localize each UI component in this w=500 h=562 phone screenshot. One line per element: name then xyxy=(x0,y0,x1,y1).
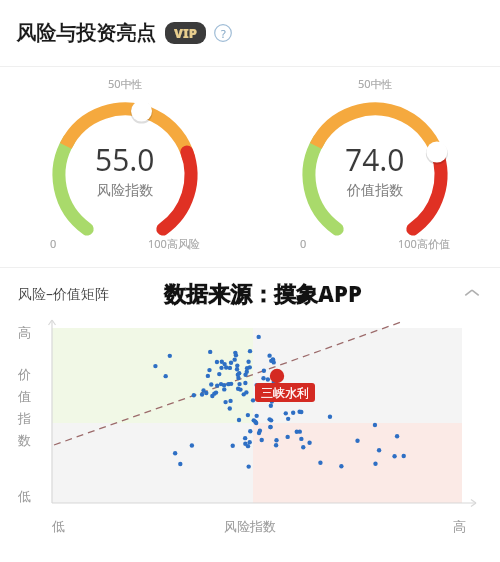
staticText: 0 xyxy=(300,236,307,251)
staticText: VIP xyxy=(174,24,197,42)
staticText: 高 xyxy=(18,324,31,340)
staticText: 风险指数 xyxy=(224,518,276,534)
staticText: 指 xyxy=(18,410,31,426)
staticText: 低 xyxy=(52,518,65,534)
staticText: 55.0 xyxy=(95,139,155,180)
staticText: 数据来源：摸象APP xyxy=(164,278,362,308)
staticText: 74.0 xyxy=(345,139,405,180)
staticText: 风险指数 xyxy=(97,182,153,200)
staticText: 三峡水利 xyxy=(261,385,309,400)
staticText: 50中性 xyxy=(358,76,393,91)
button[interactable]: VIP xyxy=(165,22,206,44)
staticText: ? xyxy=(221,26,226,41)
staticText: 低 xyxy=(18,488,31,504)
button[interactable]: 收起 xyxy=(460,281,484,305)
staticText: 0 xyxy=(50,236,57,251)
staticText: 风险–价值矩阵 xyxy=(18,284,109,303)
staticText: 价值指数 xyxy=(347,182,403,200)
staticText: 数 xyxy=(18,432,31,448)
staticText: 值 xyxy=(18,388,31,404)
staticText: 价 xyxy=(18,366,31,382)
button[interactable]: 三峡水利 xyxy=(255,383,315,402)
staticText: 100高价值 xyxy=(398,236,450,251)
staticText: 100高风险 xyxy=(148,236,200,251)
staticText: 50中性 xyxy=(108,76,143,91)
staticText: 风险与投资亮点 xyxy=(16,21,156,46)
button[interactable]: 帮助 xyxy=(214,24,232,42)
staticText: 高 xyxy=(453,518,466,534)
